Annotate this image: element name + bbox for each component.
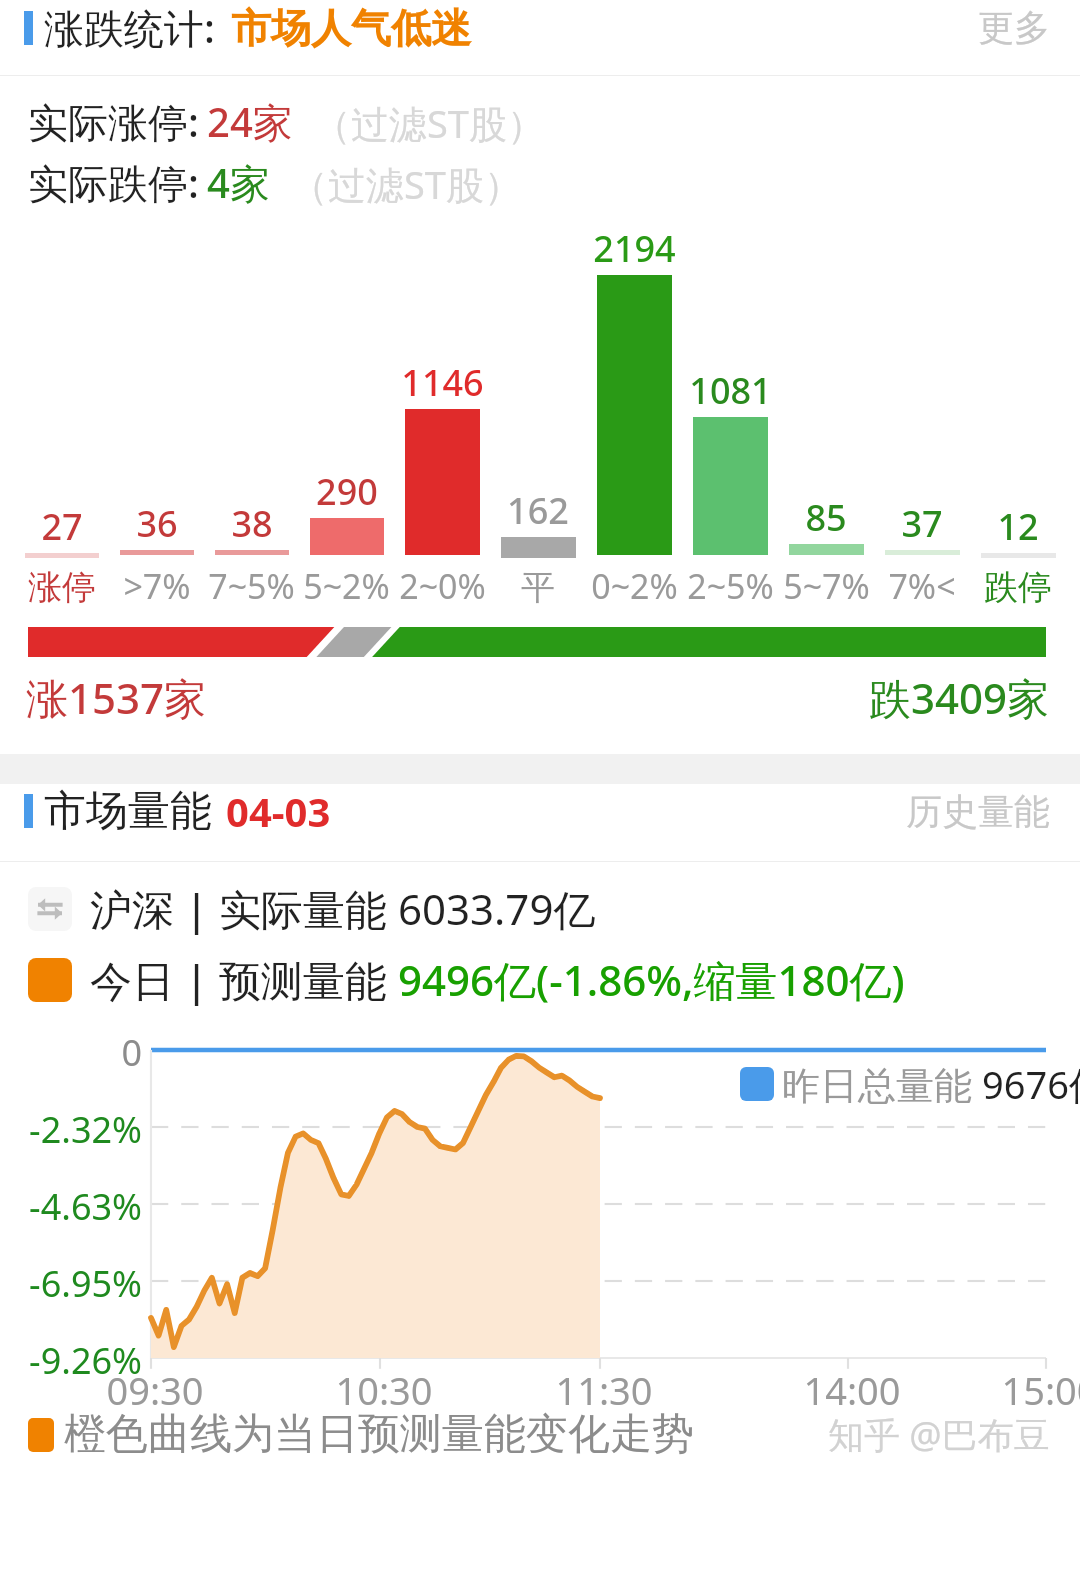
staticText: 36	[136, 499, 178, 548]
staticText: 跌停	[984, 566, 1052, 609]
staticText: 7~5%	[208, 563, 295, 609]
button[interactable]: 昨日总量能	[740, 1058, 1080, 1110]
staticText: （过滤ST股）	[290, 158, 522, 210]
staticText: 9676亿	[982, 1058, 1080, 1110]
staticText: 跌3409家	[869, 669, 1050, 726]
staticText: 实际跌停:	[28, 155, 199, 210]
staticText: -6.95%	[2, 1259, 142, 1308]
staticText: 11:30	[524, 1364, 684, 1416]
staticText: 市场量能	[44, 785, 212, 838]
button[interactable]: 38	[204, 499, 299, 609]
button[interactable]: 162	[490, 486, 586, 609]
staticText: 04-03	[226, 784, 331, 838]
staticText: -9.26%	[2, 1336, 142, 1385]
staticText: 昨日总量能	[782, 1058, 982, 1110]
staticText: 24家	[207, 94, 293, 149]
staticText: 0	[2, 1028, 142, 1077]
staticText: 12	[997, 502, 1039, 551]
button[interactable]: 290	[299, 467, 394, 609]
staticText: 9496亿(-1.86%,缩量180亿)	[398, 951, 905, 1008]
staticText: 知乎 @巴布豆	[828, 1410, 1050, 1459]
staticText: 实际涨停:	[28, 94, 199, 149]
staticText: 更多	[978, 5, 1050, 50]
staticText: 2~0%	[399, 563, 486, 609]
button[interactable]: 37	[874, 499, 970, 609]
button[interactable]: 2194	[586, 224, 682, 609]
staticText: 市场人气低迷	[231, 3, 471, 53]
staticText: 1146	[401, 358, 484, 407]
staticText: 38	[231, 499, 273, 548]
staticText: 0~2%	[591, 563, 678, 609]
staticText: 6033.79亿	[398, 880, 596, 937]
staticText: （过滤ST股）	[313, 97, 545, 149]
button[interactable]: 1081	[682, 366, 778, 609]
button[interactable]: 12	[970, 502, 1066, 609]
staticText: 162	[507, 486, 569, 535]
button[interactable]	[0, 627, 1080, 657]
staticText: 历史量能	[906, 789, 1050, 834]
staticText: 2194	[593, 224, 676, 273]
staticText: 09:30	[75, 1364, 235, 1416]
button[interactable]: 今日 | 预测量能	[28, 951, 1080, 1008]
staticText: -4.63%	[2, 1182, 142, 1231]
staticText: 平	[521, 566, 555, 609]
button[interactable]: 27	[14, 502, 109, 609]
staticText: 15:00	[970, 1364, 1080, 1416]
staticText: 290	[316, 467, 378, 516]
staticText: -2.32%	[2, 1105, 142, 1154]
button[interactable]: 切换	[28, 880, 1080, 937]
staticText: 37	[901, 499, 943, 548]
staticText: 5~7%	[783, 563, 870, 609]
button[interactable]: 85	[778, 493, 874, 609]
button[interactable]: 36	[109, 499, 204, 609]
other: 切换	[28, 887, 72, 931]
staticText: 橙色曲线为当日预测量能变化走势	[64, 1408, 694, 1461]
staticText: 14:00	[772, 1364, 932, 1416]
staticText: 27	[41, 502, 83, 551]
staticText: 10:30	[304, 1364, 464, 1416]
button[interactable]: 涨跌统计:	[0, 0, 1080, 75]
staticText: 涨停	[28, 566, 96, 609]
staticText: 沪深 | 实际量能	[90, 880, 398, 937]
staticText: 2~5%	[687, 563, 774, 609]
staticText: 85	[805, 493, 847, 542]
staticText: 5~2%	[303, 563, 390, 609]
staticText: 1081	[689, 366, 772, 415]
staticText: 今日 | 预测量能	[90, 951, 398, 1008]
staticText: >7%	[123, 563, 191, 609]
staticText: 涨跌统计:	[44, 0, 215, 55]
staticText: 7%<	[888, 563, 956, 609]
staticText: 涨1537家	[26, 669, 207, 726]
button[interactable]: 市场量能	[0, 784, 1080, 861]
staticText: 4家	[207, 155, 270, 210]
button[interactable]: 1146	[394, 358, 490, 609]
